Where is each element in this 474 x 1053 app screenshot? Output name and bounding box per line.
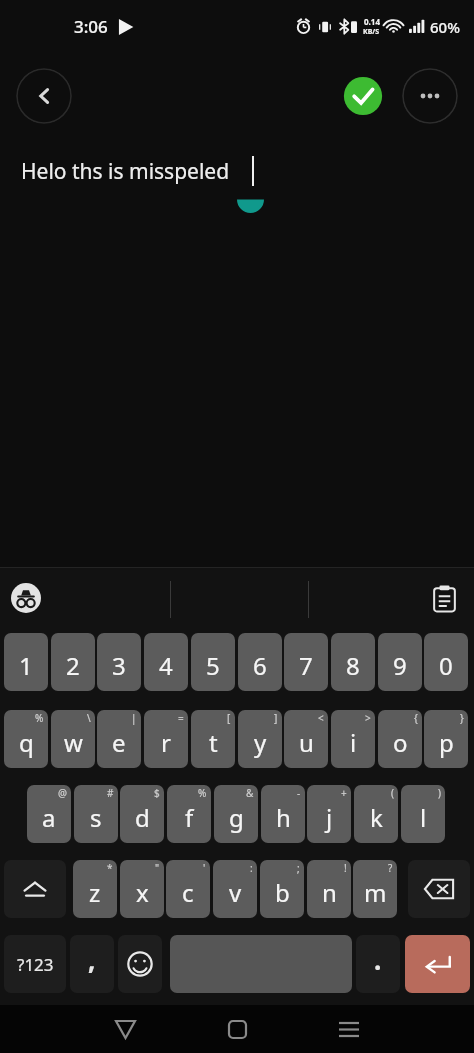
staticText: 0 — [439, 649, 453, 682]
button[interactable]: x — [120, 860, 164, 918]
button[interactable]: d — [120, 785, 164, 843]
staticText: ?123 — [17, 953, 54, 976]
button[interactable]: 4 — [144, 633, 188, 691]
staticText: ] — [274, 711, 278, 725]
staticText: e — [112, 726, 126, 759]
staticText: z — [89, 876, 101, 909]
staticText: # — [107, 786, 114, 800]
button[interactable]: u — [284, 710, 328, 768]
staticText: g — [229, 801, 244, 834]
button[interactable]: e — [97, 710, 141, 768]
button[interactable]: i — [331, 710, 375, 768]
staticText: | — [131, 711, 137, 725]
staticText: @ — [58, 786, 67, 800]
button[interactable]: j — [307, 785, 351, 843]
staticText: ' — [203, 861, 206, 875]
staticText: 5 — [206, 649, 220, 682]
button[interactable]: Incognito mode — [7, 579, 45, 617]
staticText: 9 — [393, 649, 407, 682]
button[interactable]: 8 — [331, 633, 375, 691]
button[interactable]: s — [74, 785, 118, 843]
staticText: q — [19, 726, 34, 759]
button[interactable]: h — [261, 785, 305, 843]
button[interactable]: Back — [16, 68, 72, 124]
staticText: - — [297, 786, 301, 800]
staticText: 3:06 — [74, 15, 108, 38]
button[interactable]: Helo ths is misspeled — [0, 138, 474, 568]
button[interactable]: Back — [99, 1005, 151, 1053]
button[interactable]: Emoji — [118, 935, 162, 993]
button[interactable]: m — [353, 860, 397, 918]
button[interactable]: Save — [342, 75, 384, 117]
button[interactable]: , — [70, 935, 114, 993]
button[interactable]: Clipboard — [424, 578, 464, 618]
staticText: , — [88, 942, 96, 977]
staticText: a — [42, 801, 56, 834]
button[interactable]: f — [167, 785, 211, 843]
button[interactable]: r — [144, 710, 188, 768]
staticText: + — [341, 786, 347, 800]
staticText: c — [182, 876, 194, 909]
staticText: : — [250, 861, 253, 875]
staticText: } — [460, 711, 464, 725]
staticText: w — [64, 726, 83, 759]
button[interactable]: n — [307, 860, 351, 918]
button[interactable]: 2 — [51, 633, 95, 691]
button[interactable]: g — [214, 785, 258, 843]
button[interactable]: t — [191, 710, 235, 768]
staticText: l — [420, 801, 427, 834]
button[interactable]: c — [166, 860, 210, 918]
button[interactable]: Backspace — [408, 860, 470, 918]
button[interactable]: 9 — [378, 633, 422, 691]
button[interactable]: ?123 — [4, 935, 66, 993]
button[interactable]: 6 — [238, 633, 282, 691]
staticText: y — [254, 726, 267, 759]
button[interactable]: o — [378, 710, 422, 768]
staticText: Helo ths is misspeled — [21, 157, 230, 186]
staticText: . — [374, 942, 382, 977]
button[interactable]: z — [73, 860, 117, 918]
staticText: ? — [388, 861, 393, 875]
staticText: o — [393, 726, 408, 759]
staticText: k — [370, 801, 383, 834]
staticText: % — [35, 711, 44, 725]
button[interactable]: k — [354, 785, 398, 843]
button[interactable]: 5 — [191, 633, 235, 691]
staticText: * — [107, 861, 113, 875]
button[interactable]: Shift — [4, 860, 66, 918]
staticText: 4 — [159, 649, 173, 682]
button[interactable]: l — [401, 785, 445, 843]
button[interactable]: Enter — [405, 935, 470, 993]
staticText: \ — [87, 711, 91, 725]
button[interactable]: w — [51, 710, 95, 768]
button[interactable]: 3 — [97, 633, 141, 691]
staticText: p — [439, 726, 454, 759]
button[interactable]: Recent apps — [323, 1005, 375, 1053]
button[interactable]: Space — [170, 935, 352, 993]
button[interactable]: a — [27, 785, 71, 843]
staticText: $ — [154, 786, 160, 800]
button[interactable]: 1 — [4, 633, 48, 691]
staticText: h — [276, 801, 291, 834]
staticText: f — [185, 801, 194, 834]
staticText: = — [178, 711, 184, 725]
button[interactable]: 7 — [284, 633, 328, 691]
button[interactable]: q — [4, 710, 48, 768]
staticText: ; — [297, 861, 300, 875]
button[interactable]: 0 — [424, 633, 468, 691]
button[interactable]: v — [213, 860, 257, 918]
button[interactable]: Home — [211, 1005, 263, 1053]
staticText: ( — [391, 786, 394, 800]
staticText: > — [365, 711, 371, 725]
button[interactable]: p — [424, 710, 468, 768]
staticText: s — [90, 801, 102, 834]
staticText: ! — [344, 861, 347, 875]
staticText: n — [322, 876, 337, 909]
button[interactable]: y — [238, 710, 282, 768]
staticText: j — [326, 801, 333, 834]
button[interactable]: More options — [402, 68, 458, 124]
button[interactable]: b — [260, 860, 304, 918]
staticText: b — [275, 876, 290, 909]
button[interactable]: . — [356, 935, 400, 993]
staticText: d — [135, 801, 150, 834]
